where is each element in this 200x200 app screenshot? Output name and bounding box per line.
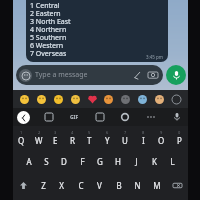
- staticText: 7: [124, 130, 127, 135]
- button[interactable]: Backspace: [166, 173, 188, 197]
- staticText: G: [97, 156, 103, 167]
- button[interactable]: J: [127, 149, 145, 173]
- button[interactable]: Voice message: [166, 65, 186, 85]
- staticText: L: [170, 156, 175, 167]
- staticText: 7 Overseas: [30, 49, 67, 57]
- button[interactable]: Voice input: [169, 109, 185, 125]
- button[interactable]: F: [73, 149, 91, 173]
- button[interactable]: Heart: [87, 94, 98, 105]
- button[interactable]: 0: [170, 126, 188, 149]
- staticText: R: [70, 135, 75, 146]
- staticText: A: [26, 156, 32, 167]
- button[interactable]: Fire: [103, 94, 114, 105]
- button[interactable]: 8: [134, 126, 152, 149]
- staticText: 6: [106, 130, 109, 135]
- staticText: P: [177, 135, 182, 146]
- staticText: H: [115, 156, 121, 167]
- button[interactable]: Emoji: [16, 65, 163, 85]
- staticText: U: [122, 135, 128, 146]
- staticText: Type a message: [35, 70, 129, 80]
- staticText: E: [53, 135, 58, 146]
- button[interactable]: D: [55, 149, 73, 173]
- staticText: D: [61, 156, 67, 167]
- button[interactable]: Camera: [145, 67, 161, 83]
- button[interactable]: 1: [13, 126, 30, 149]
- button[interactable]: 2: [30, 126, 47, 149]
- staticText: S: [44, 156, 49, 167]
- staticText: W: [35, 135, 43, 146]
- button[interactable]: Grinning: [19, 94, 30, 105]
- staticText: 5: [88, 130, 91, 135]
- staticText: C: [78, 180, 84, 191]
- staticText: 3: [54, 130, 57, 135]
- button[interactable]: B: [109, 173, 128, 197]
- staticText: 2 Eastern: [30, 9, 61, 17]
- button[interactable]: 6: [98, 126, 116, 149]
- button[interactable]: Stickers: [42, 110, 56, 124]
- button[interactable]: More options: [144, 110, 158, 124]
- staticText: 3:45 pm: [146, 54, 164, 60]
- button[interactable]: A: [20, 149, 37, 173]
- staticText: K: [152, 156, 157, 167]
- button[interactable]: 5: [81, 126, 98, 149]
- staticText: V: [97, 180, 102, 191]
- staticText: X: [59, 180, 64, 191]
- button[interactable]: C: [71, 173, 90, 197]
- button[interactable]: 4: [64, 126, 81, 149]
- staticText: 4 Northern: [30, 25, 67, 33]
- button[interactable]: Settings: [118, 110, 132, 124]
- button[interactable]: 7: [116, 126, 134, 149]
- button[interactable]: 1 Central: [26, 0, 168, 62]
- staticText: B: [116, 180, 122, 191]
- button[interactable]: Thumbs up: [154, 94, 165, 105]
- staticText: 4: [71, 130, 74, 135]
- staticText: 0: [178, 130, 181, 135]
- button[interactable]: K: [145, 149, 163, 173]
- staticText: Q: [18, 135, 25, 146]
- staticText: 8: [142, 130, 145, 135]
- button[interactable]: N: [128, 173, 147, 197]
- staticText: Y: [105, 135, 110, 146]
- button[interactable]: Pray: [137, 94, 148, 105]
- button[interactable]: Emoji: [19, 69, 32, 82]
- button[interactable]: X: [52, 173, 71, 197]
- staticText: 1: [20, 130, 23, 135]
- button[interactable]: Clipboard: [93, 110, 107, 124]
- staticText: T: [87, 135, 92, 146]
- button[interactable]: Cool: [53, 94, 64, 105]
- button[interactable]: M: [147, 173, 166, 197]
- staticText: M: [153, 180, 161, 191]
- staticText: Z: [41, 180, 46, 191]
- staticText: GIF: [70, 114, 79, 121]
- button[interactable]: Attach: [129, 67, 145, 83]
- button[interactable]: H: [109, 149, 127, 173]
- staticText: 5 Southern: [30, 33, 67, 41]
- button[interactable]: 3: [47, 126, 64, 149]
- button[interactable]: Back: [17, 111, 30, 124]
- staticText: I: [142, 135, 145, 146]
- staticText: 2: [38, 130, 41, 135]
- staticText: 1 Central: [30, 1, 60, 9]
- staticText: F: [80, 156, 85, 167]
- staticText: O: [158, 135, 165, 146]
- staticText: 6 Western: [30, 41, 64, 49]
- button[interactable]: Joy: [70, 94, 81, 105]
- button[interactable]: Laughing: [36, 94, 47, 105]
- button[interactable]: Emoji: [120, 94, 131, 105]
- button[interactable]: 9: [152, 126, 170, 149]
- button[interactable]: V: [90, 173, 109, 197]
- button[interactable]: GIF: [67, 110, 81, 124]
- button[interactable]: S: [37, 149, 55, 173]
- button[interactable]: G: [91, 149, 109, 173]
- staticText: 9: [160, 130, 163, 135]
- staticText: N: [134, 180, 141, 191]
- button[interactable]: Z: [34, 173, 52, 197]
- button[interactable]: L: [163, 149, 181, 173]
- button[interactable]: Shift: [13, 173, 34, 197]
- button[interactable]: More emoji: [171, 94, 182, 105]
- staticText: J: [135, 156, 138, 167]
- staticText: 3 North East: [30, 17, 71, 25]
